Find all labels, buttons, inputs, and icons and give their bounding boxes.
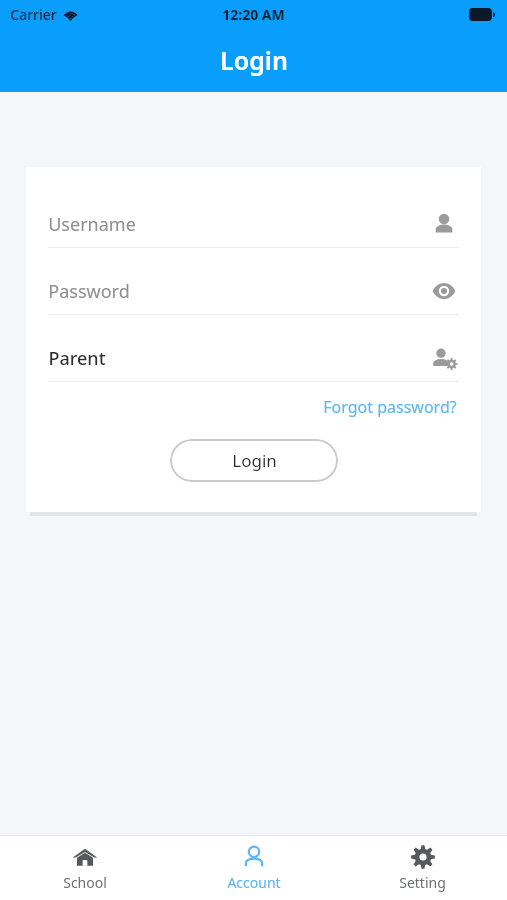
staticText: Carrier (10, 5, 57, 24)
button[interactable]: Login (170, 439, 338, 482)
staticText: 12:20 AM (222, 5, 285, 24)
button[interactable]: Username (48, 201, 459, 247)
staticText: Username (48, 212, 136, 237)
button[interactable]: Forgot password? (321, 393, 459, 421)
button[interactable]: Select role (48, 335, 459, 381)
staticText: School (63, 873, 107, 892)
button[interactable]: Setting (338, 836, 507, 900)
staticText: Password (48, 279, 130, 304)
staticText: Login (232, 449, 277, 472)
button[interactable]: Account (169, 836, 338, 900)
staticText: Setting (399, 873, 446, 892)
staticText: Parent (48, 346, 106, 371)
button[interactable]: Show password (48, 268, 459, 314)
button[interactable]: School (0, 836, 169, 900)
staticText: Forgot password? (323, 396, 457, 418)
staticText: Login (220, 43, 288, 77)
staticText: Account (227, 873, 281, 892)
